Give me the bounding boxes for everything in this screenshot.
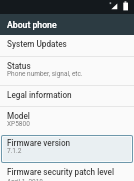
staticText: April 1, 2018: [7, 178, 44, 181]
button[interactable]: Model: [0, 105, 134, 133]
staticText: System Updates: [7, 39, 67, 49]
staticText: XP5800: [7, 120, 30, 128]
staticText: Firmware version: [7, 138, 71, 148]
staticText: About phone: [7, 20, 57, 30]
other: Battery: [123, 1, 129, 12]
other: Mobile signal: [109, 2, 119, 11]
staticText: Phone number, signal, etc.: [7, 70, 83, 78]
button[interactable]: Legal information: [0, 85, 134, 104]
staticText: Model: [7, 111, 30, 121]
button[interactable]: Status: [0, 56, 134, 84]
button[interactable]: Firmware version: [1, 135, 133, 163]
staticText: Status: [7, 61, 31, 71]
staticText: Firmware security patch level: [7, 167, 115, 177]
button[interactable]: System Updates: [0, 35, 134, 55]
staticText: Legal information: [7, 90, 72, 100]
button[interactable]: Firmware security patch level: [0, 163, 134, 181]
staticText: 7.1.2: [7, 147, 22, 155]
